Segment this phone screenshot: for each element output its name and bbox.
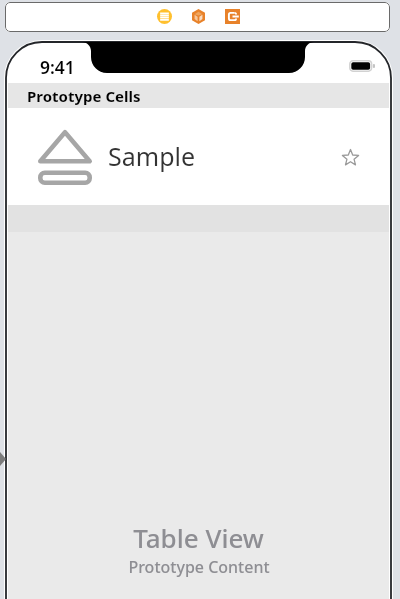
staticText: Prototype Cells (27, 86, 141, 106)
staticText: Prototype Content (128, 556, 270, 578)
button[interactable]: Object library (181, 3, 215, 31)
button[interactable]: Document outline (147, 3, 181, 31)
button[interactable]: Media library (215, 3, 249, 31)
staticText: 9:41 (40, 55, 75, 79)
button[interactable]: Favorite (330, 137, 370, 177)
staticText: Sample (108, 139, 196, 173)
staticText: Table View (133, 520, 264, 555)
button[interactable]: Sample (8, 108, 389, 205)
